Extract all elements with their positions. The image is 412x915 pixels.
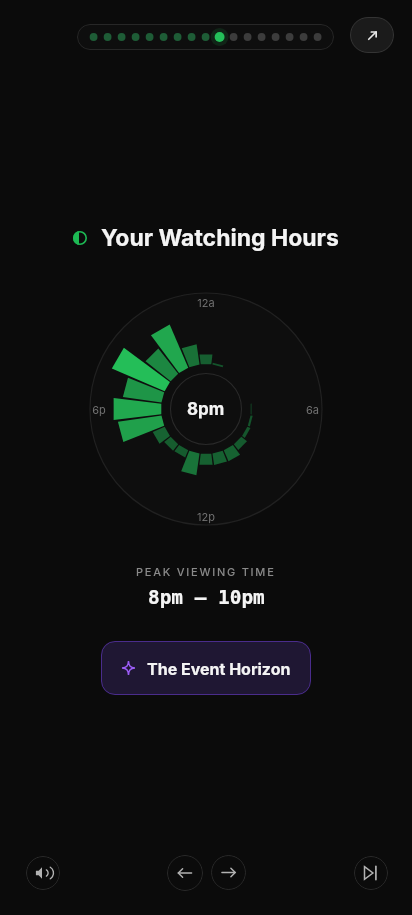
button[interactable]: Previous bbox=[167, 855, 203, 891]
staticText: 8pm — 10pm bbox=[148, 586, 265, 609]
button[interactable]: Skip bbox=[354, 856, 388, 890]
button[interactable]: Volume bbox=[26, 856, 60, 890]
staticText: The Event Horizon bbox=[147, 659, 291, 678]
staticText: Your Watching Hours bbox=[101, 224, 339, 252]
button[interactable] bbox=[77, 24, 334, 50]
button[interactable]: Next bbox=[211, 855, 246, 890]
button[interactable]: Expand bbox=[350, 17, 394, 53]
staticText: 6p bbox=[92, 403, 106, 416]
staticText: 6a bbox=[306, 403, 319, 416]
staticText: 12p bbox=[197, 510, 215, 523]
staticText: 8pm bbox=[187, 399, 225, 420]
button[interactable]: The Event Horizon bbox=[101, 641, 311, 695]
staticText: PEAK VIEWING TIME bbox=[136, 565, 276, 578]
staticText: 12a bbox=[197, 296, 215, 309]
